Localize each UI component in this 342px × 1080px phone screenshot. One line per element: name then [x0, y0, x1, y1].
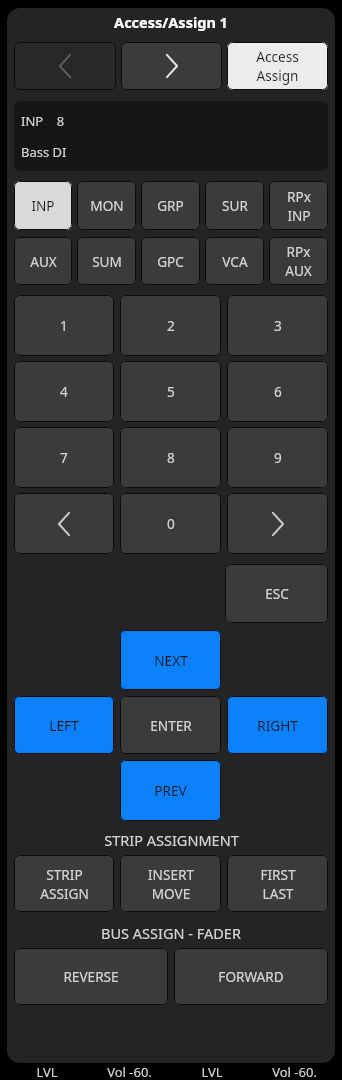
staticText: PREV: [154, 781, 187, 800]
staticText: 6: [274, 382, 282, 401]
button[interactable]: 7: [14, 427, 114, 488]
staticText: Vol -60.: [107, 1063, 152, 1080]
staticText: SUR: [222, 196, 248, 215]
button[interactable]: Next: [121, 42, 222, 90]
button[interactable]: 6: [227, 361, 328, 422]
staticText: STRIP ASSIGN: [40, 865, 89, 903]
button[interactable]: Access Assign: [227, 42, 328, 90]
staticText: INSERT MOVE: [148, 865, 194, 903]
staticText: 9: [274, 448, 282, 467]
staticText: VCA: [222, 252, 248, 271]
button[interactable]: RPx AUX: [269, 237, 328, 285]
button[interactable]: 2: [120, 295, 221, 356]
staticText: ESC: [265, 584, 289, 603]
staticText: LVL: [36, 1063, 58, 1080]
button[interactable]: RPx INP: [269, 181, 328, 230]
button[interactable]: MON: [77, 181, 136, 230]
staticText: 8: [167, 448, 175, 467]
staticText: Vol -60.: [272, 1063, 317, 1080]
staticText: ENTER: [150, 716, 192, 735]
staticText: GPC: [157, 252, 184, 271]
staticText: BUS ASSIGN - FADER: [101, 923, 241, 943]
staticText: 2: [167, 316, 175, 335]
staticText: 0: [167, 514, 175, 533]
staticText: GRP: [157, 196, 184, 215]
button[interactable]: 8: [120, 427, 221, 488]
staticText: 7: [60, 448, 68, 467]
button[interactable]: 4: [14, 361, 114, 422]
button[interactable]: Forward: [227, 493, 328, 554]
button[interactable]: Back: [14, 493, 114, 554]
button[interactable]: FIRST LAST: [227, 855, 328, 912]
button[interactable]: STRIP ASSIGN: [14, 855, 114, 912]
button[interactable]: GPC: [141, 237, 200, 285]
staticText: RIGHT: [257, 716, 298, 735]
button[interactable]: LEFT: [14, 696, 114, 754]
button[interactable]: INP: [14, 181, 72, 230]
staticText: AUX: [30, 252, 57, 271]
button[interactable]: Previous: [14, 42, 116, 90]
button[interactable]: 3: [227, 295, 328, 356]
button[interactable]: INSERT MOVE: [120, 855, 221, 912]
staticText: SUM: [92, 252, 122, 271]
staticText: INP 8: [21, 112, 65, 130]
button[interactable]: AUX: [14, 237, 72, 285]
staticText: REVERSE: [63, 967, 119, 986]
button[interactable]: 9: [227, 427, 328, 488]
staticText: Bass DI: [21, 143, 67, 161]
staticText: LVL: [201, 1063, 223, 1080]
button[interactable]: ENTER: [120, 696, 221, 754]
staticText: Access Assign: [256, 47, 299, 85]
staticText: RPx INP: [287, 187, 311, 225]
staticText: Access/Assign 1: [114, 12, 228, 32]
button[interactable]: GRP: [141, 181, 200, 230]
staticText: LEFT: [49, 716, 79, 735]
button[interactable]: SUR: [205, 181, 264, 230]
staticText: 5: [167, 382, 175, 401]
button[interactable]: 0: [120, 493, 221, 554]
staticText: FORWARD: [218, 967, 284, 986]
staticText: NEXT: [154, 651, 188, 670]
staticText: 4: [60, 382, 68, 401]
button[interactable]: SUM: [77, 237, 136, 285]
button[interactable]: 1: [14, 295, 114, 356]
staticText: MON: [90, 196, 124, 215]
button[interactable]: 5: [120, 361, 221, 422]
staticText: 3: [274, 316, 282, 335]
staticText: 1: [60, 316, 68, 335]
button[interactable]: VCA: [205, 237, 264, 285]
button[interactable]: NEXT: [120, 630, 221, 690]
button[interactable]: ESC: [225, 564, 328, 623]
staticText: FIRST LAST: [260, 865, 296, 903]
staticText: STRIP ASSIGNMENT: [104, 830, 239, 850]
button[interactable]: FORWARD: [174, 948, 328, 1005]
button[interactable]: REVERSE: [14, 948, 168, 1005]
staticText: INP: [31, 196, 55, 215]
button[interactable]: RIGHT: [227, 696, 328, 754]
staticText: RPx AUX: [285, 242, 312, 280]
button[interactable]: PREV: [120, 760, 221, 821]
